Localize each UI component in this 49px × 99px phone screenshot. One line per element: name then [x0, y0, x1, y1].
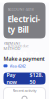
- staticText: $128.50: [29, 71, 42, 86]
- staticText: $128.50: [7, 49, 39, 60]
- button[interactable]: Pay now: [3, 72, 45, 84]
- staticText: Electricity Bill: [7, 14, 40, 35]
- staticText: ACCOUNT 4418: [7, 6, 33, 12]
- staticText: Recent activity: [12, 88, 36, 93]
- staticText: PAYMENT METHOD: [3, 40, 20, 51]
- staticText: Pay now: [6, 71, 16, 86]
- staticText: Make a payment: [3, 55, 44, 62]
- button[interactable]: Make a payment: [3, 55, 45, 68]
- staticText: Amount due: [7, 43, 28, 48]
- staticText: Visa 4242: [9, 63, 25, 68]
